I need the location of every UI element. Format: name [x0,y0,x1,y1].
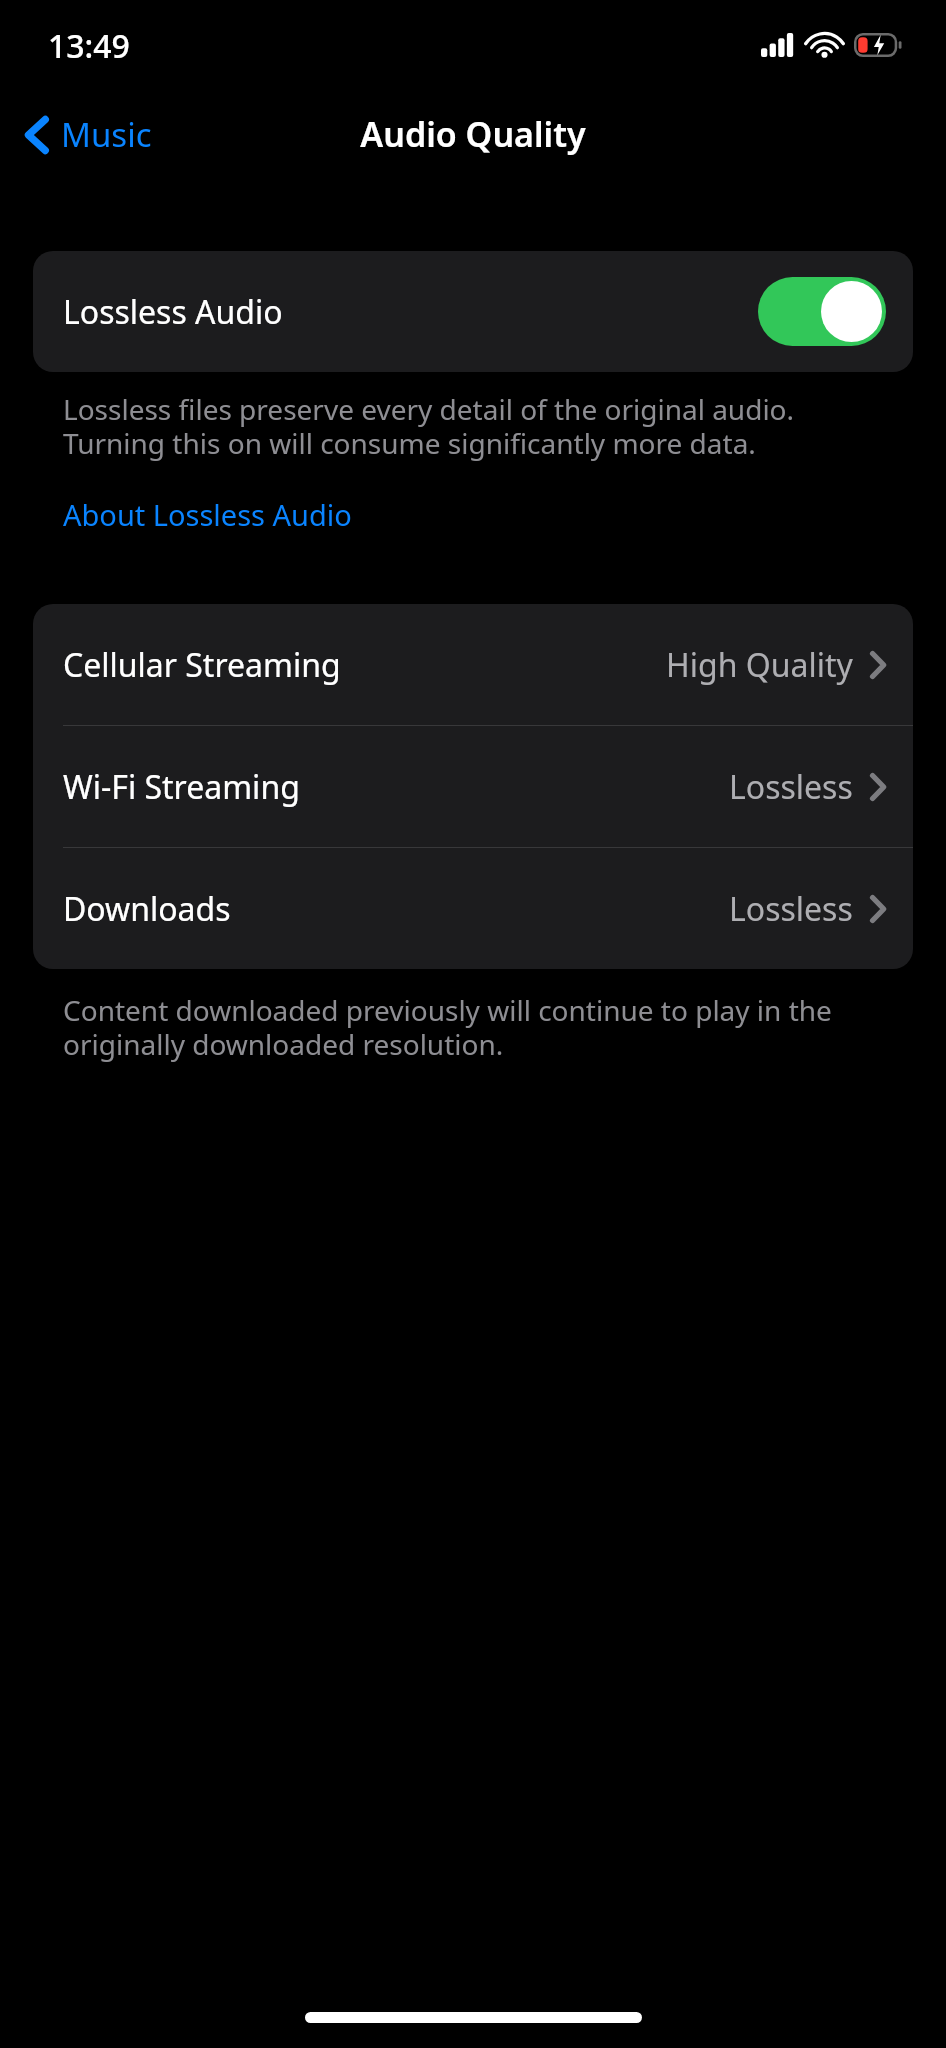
button[interactable]: Wi-Fi Streaming [33,726,913,847]
staticText: Audio Quality [360,111,586,157]
staticText: Lossless files preserve every detail of … [63,390,888,463]
staticText: Wi-Fi Streaming [63,765,300,809]
staticText: About Lossless Audio [63,495,352,534]
button[interactable]: Music [16,106,160,163]
button[interactable]: Cellular Streaming [33,604,913,725]
staticText: Lossless Audio [63,290,283,334]
staticText: Lossless [729,765,853,809]
button[interactable]: About Lossless Audio [63,495,352,534]
staticText: Content downloaded previously will conti… [63,991,888,1064]
button[interactable]: Lossless Audio toggle, on [758,277,886,346]
staticText: Lossless [729,887,853,931]
staticText: High Quality [666,643,853,687]
staticText: 13:49 [48,24,130,68]
button[interactable]: Lossless Audio [33,251,913,372]
button[interactable]: Downloads [33,848,913,969]
staticText: Music [61,112,152,157]
staticText: Downloads [63,887,231,931]
staticText: Cellular Streaming [63,643,341,687]
